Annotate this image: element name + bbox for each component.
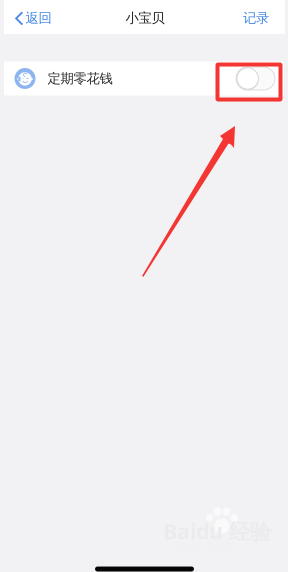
button[interactable]: 记录: [233, 0, 285, 34]
staticText: 记录: [243, 10, 269, 26]
staticText: Baidu 经验: [163, 517, 271, 545]
staticText: 小宝贝: [125, 10, 164, 26]
staticText: 定期零花钱: [47, 70, 112, 87]
staticText: 返回: [25, 10, 51, 26]
button[interactable]: 返回: [4, 0, 61, 34]
